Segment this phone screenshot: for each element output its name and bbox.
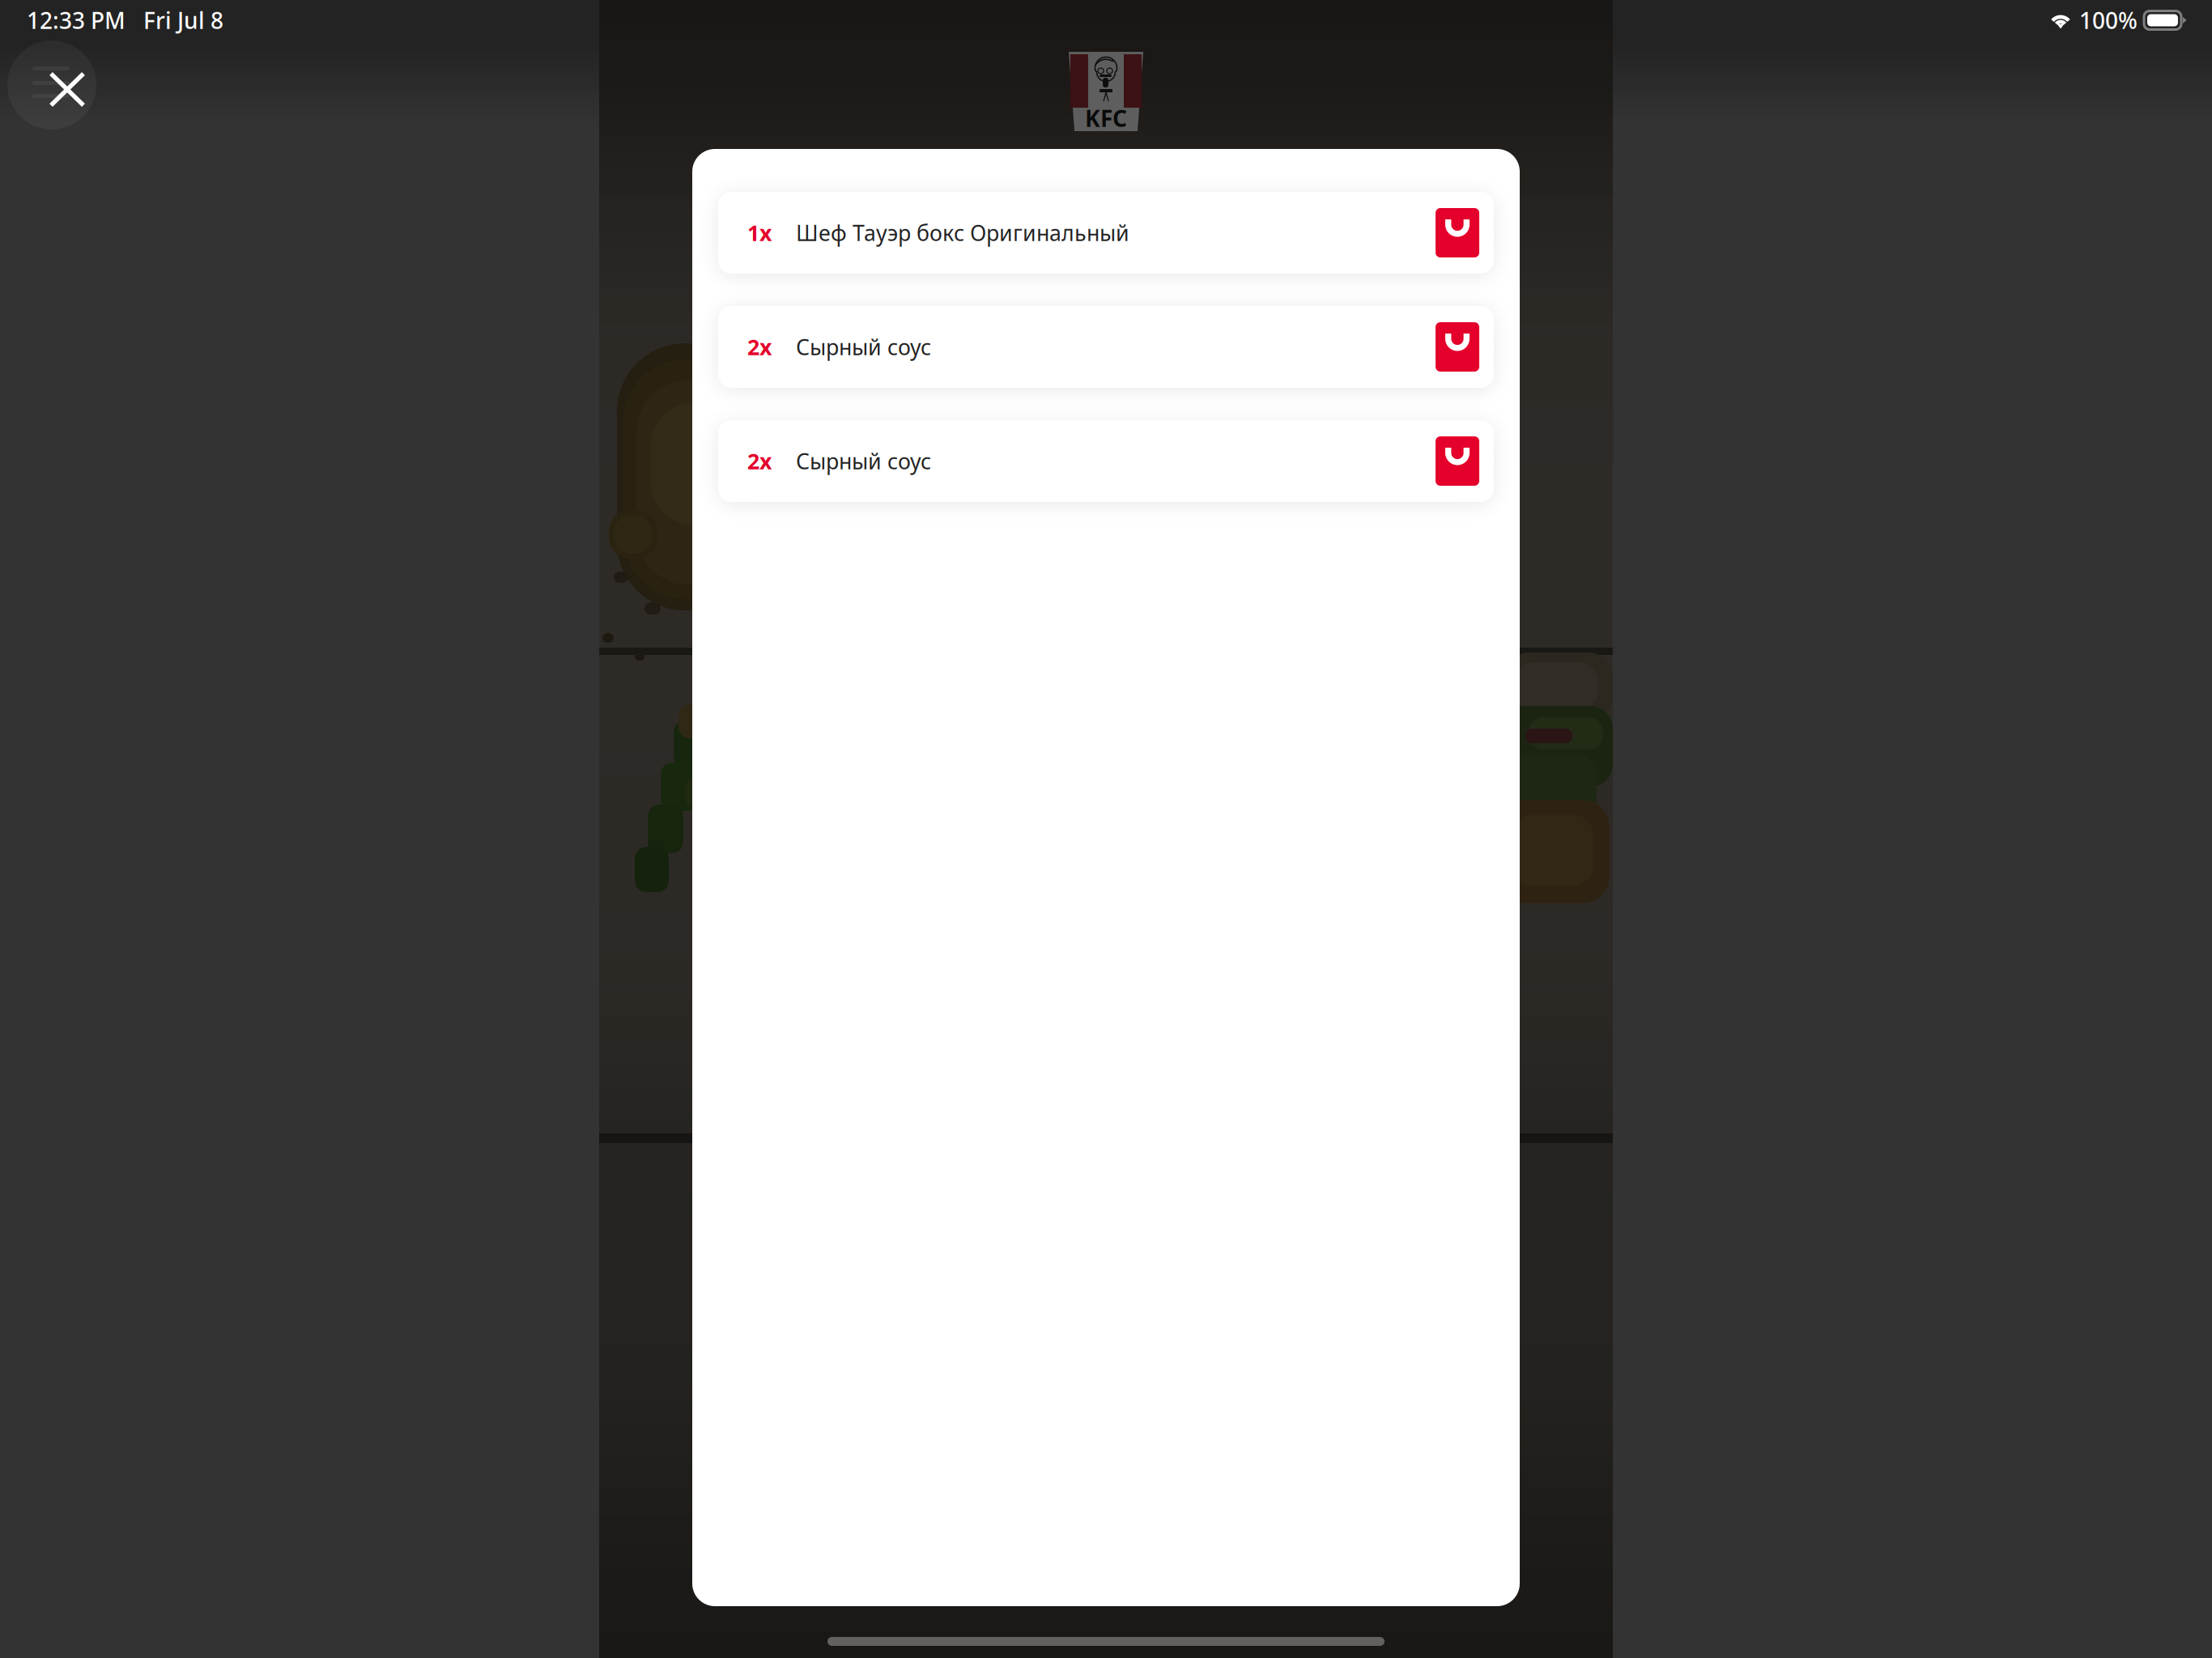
button[interactable]: 1x xyxy=(718,192,1494,274)
button[interactable]: Close xyxy=(7,40,96,130)
staticText: 12:33 PM xyxy=(27,5,125,35)
staticText: Fri Jul 8 xyxy=(143,5,223,35)
staticText: 1x xyxy=(747,218,772,247)
staticText: KFC xyxy=(1085,103,1127,133)
staticText: Сырный соус xyxy=(796,447,931,475)
staticText: Сырный соус xyxy=(796,333,931,361)
button[interactable]: 2x xyxy=(718,306,1494,388)
staticText: 2x xyxy=(747,333,772,361)
staticText: 100% xyxy=(2079,5,2138,35)
staticText: Шеф Тауэр бокс Оригинальный xyxy=(796,218,1129,247)
button[interactable]: 2x xyxy=(718,420,1494,502)
staticText: 2x xyxy=(747,447,772,475)
